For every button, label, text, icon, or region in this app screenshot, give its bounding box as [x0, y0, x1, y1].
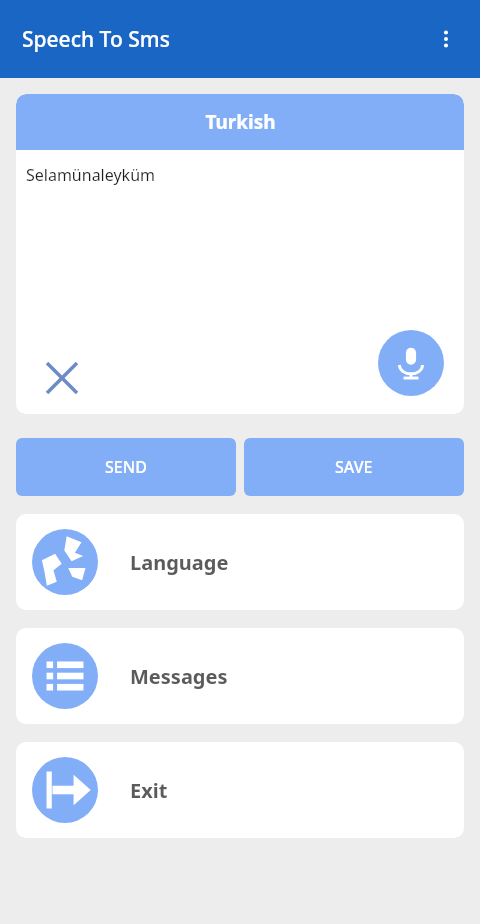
staticText: Messages: [130, 663, 228, 690]
staticText: Speech To Sms: [22, 25, 170, 54]
button[interactable]: More options: [422, 15, 470, 63]
button[interactable]: Exit: [16, 742, 464, 838]
button[interactable]: Messages: [16, 628, 464, 724]
staticText: SAVE: [335, 456, 373, 478]
button[interactable]: Turkish: [16, 94, 464, 150]
staticText: Language: [130, 549, 229, 576]
button[interactable]: SAVE: [244, 438, 464, 496]
staticText: Exit: [130, 777, 168, 804]
button[interactable]: Language: [16, 514, 464, 610]
staticText: Turkish: [205, 109, 276, 135]
staticText: Selamünaleyküm: [26, 164, 156, 186]
staticText: SEND: [105, 456, 147, 478]
button[interactable]: Record speech: [378, 330, 444, 396]
button[interactable]: SEND: [16, 438, 236, 496]
button[interactable]: Clear: [40, 356, 84, 400]
